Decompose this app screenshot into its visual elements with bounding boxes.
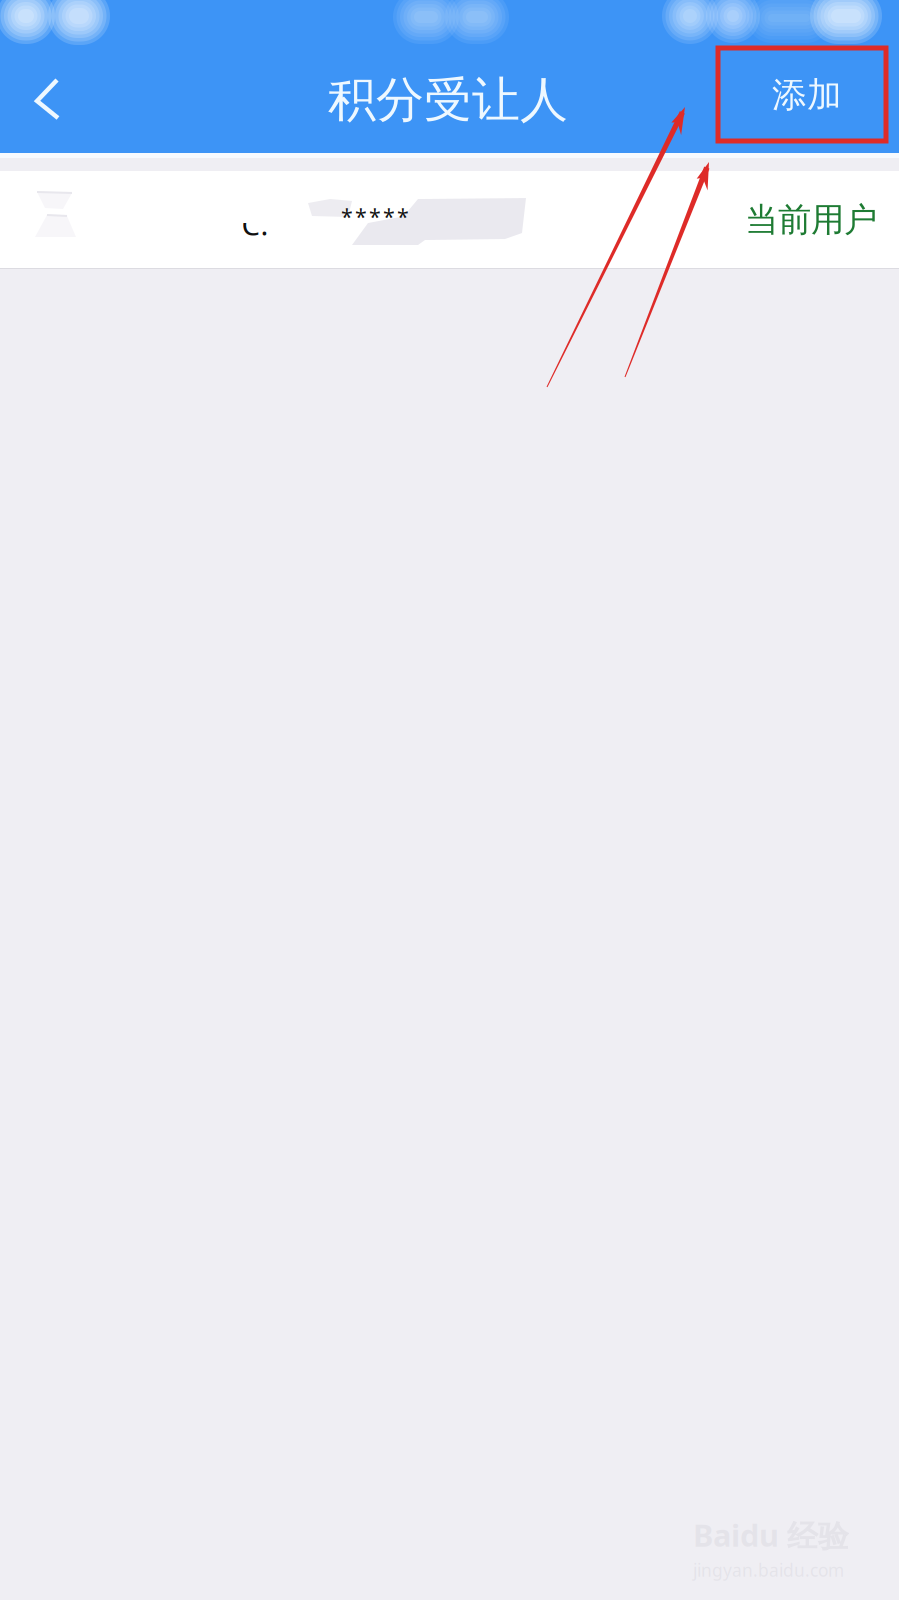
button[interactable]: C.: [0, 171, 899, 268]
staticText: 当前用户: [745, 199, 877, 240]
staticText: 添加: [772, 74, 842, 116]
button[interactable]: 添加: [723, 48, 891, 141]
staticText: C.: [241, 204, 268, 243]
staticText: jingyan.baidu.com: [693, 1558, 844, 1581]
staticText: *****: [341, 202, 409, 230]
staticText: Baidu 经验: [693, 1514, 849, 1555]
button[interactable]: 返回: [0, 47, 98, 153]
staticText: 积分受让人: [328, 70, 568, 129]
